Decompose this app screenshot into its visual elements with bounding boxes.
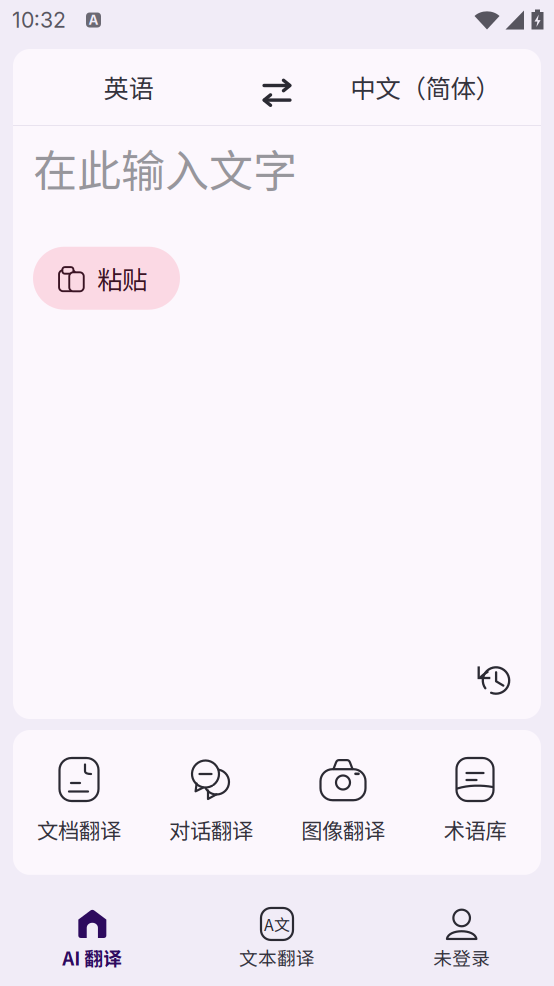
staticText: 文档翻译 (37, 814, 121, 845)
staticText: AI 翻译 (62, 944, 122, 971)
staticText: 图像翻译 (301, 814, 385, 845)
staticText: A文 (264, 912, 290, 936)
button[interactable]: 术语库 (409, 757, 541, 845)
button[interactable]: 未登录 (369, 902, 554, 971)
staticText: 中文（简体） (350, 69, 500, 105)
button[interactable]: AI 翻译 (0, 902, 185, 971)
button[interactable]: 中文（简体） (310, 49, 541, 125)
staticText: A (88, 12, 98, 28)
button[interactable]: 粘贴 (33, 247, 180, 310)
button[interactable]: A文 (185, 902, 369, 971)
staticText: 未登录 (433, 944, 490, 971)
button[interactable]: 英语 (13, 49, 244, 125)
button[interactable]: History (471, 657, 515, 701)
staticText: 文本翻译 (239, 944, 315, 971)
staticText: 英语 (103, 69, 153, 105)
staticText: 在此输入文字 (33, 136, 297, 200)
button[interactable]: 对话翻译 (145, 757, 277, 845)
staticText: 粘贴 (97, 260, 147, 297)
staticText: 对话翻译 (169, 814, 253, 845)
staticText: 术语库 (443, 814, 506, 845)
staticText: 10:32 (12, 7, 66, 33)
button[interactable]: Swap languages (244, 49, 310, 125)
button[interactable]: 图像翻译 (277, 757, 409, 845)
button[interactable]: 文档翻译 (13, 757, 145, 845)
